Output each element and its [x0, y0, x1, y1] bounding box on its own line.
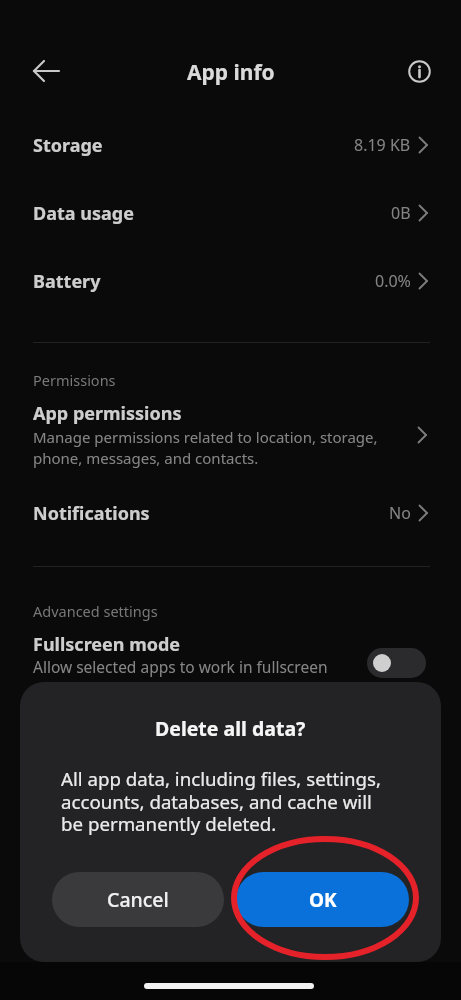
staticText: No	[389, 502, 411, 524]
staticText: Delete all data?	[155, 715, 306, 742]
staticText: Cancel	[107, 886, 169, 913]
button[interactable]: OK	[236, 872, 409, 927]
button[interactable]: Notifications	[0, 479, 461, 547]
staticText: Fullscreen mode	[33, 632, 181, 657]
staticText: 8.19 KB	[354, 134, 411, 156]
staticText: All app data, including files, settings,…	[61, 766, 382, 836]
staticText: Notifications	[33, 501, 150, 526]
button[interactable]	[24, 49, 68, 93]
button[interactable]: Storage	[0, 111, 461, 179]
button[interactable]	[397, 49, 441, 93]
button[interactable]: App permissions	[0, 394, 461, 476]
staticText: 0.0%	[375, 270, 411, 292]
button[interactable]: Fullscreen mode	[0, 622, 461, 684]
staticText: Allow selected apps to work in fullscree…	[33, 656, 328, 677]
button[interactable]: Data usage	[0, 179, 461, 247]
staticText: Manage permissions related to location, …	[33, 427, 378, 469]
staticText: OK	[309, 887, 337, 913]
staticText: App permissions	[33, 401, 182, 426]
staticText: App info	[187, 58, 275, 87]
button[interactable]	[367, 648, 426, 678]
staticText: Battery	[33, 269, 101, 294]
staticText: Data usage	[33, 201, 134, 226]
staticText: Advanced settings	[33, 601, 158, 621]
staticText: Storage	[33, 133, 103, 158]
staticText: 0B	[391, 202, 411, 224]
button[interactable]: Battery	[0, 247, 461, 315]
button[interactable]: Cancel	[52, 872, 224, 927]
staticText: Permissions	[33, 370, 116, 390]
